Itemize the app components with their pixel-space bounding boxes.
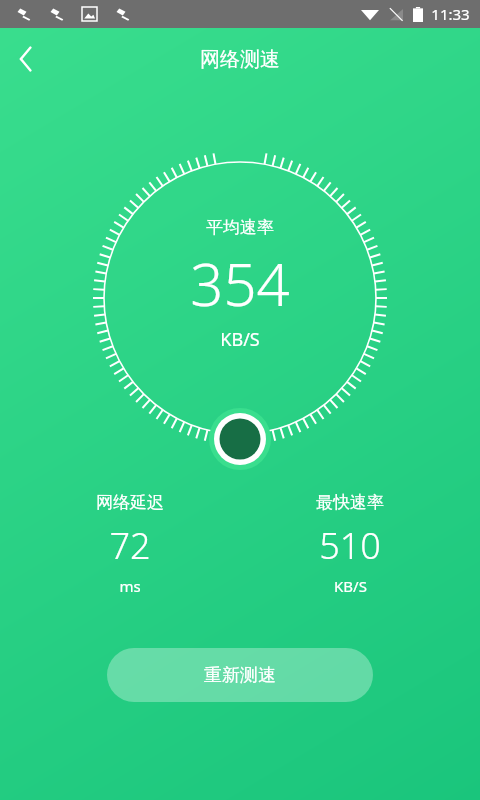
- staticText: ms: [119, 576, 141, 596]
- staticText: 72: [109, 521, 151, 570]
- staticText: 网络测速: [200, 47, 280, 72]
- staticText: 354: [190, 244, 290, 323]
- staticText: 平均速率: [206, 217, 274, 238]
- staticText: 510: [319, 521, 381, 570]
- staticText: 重新测速: [204, 664, 276, 687]
- button[interactable]: Back: [0, 33, 52, 85]
- button[interactable]: 重新测速: [107, 648, 373, 702]
- staticText: KB/S: [220, 327, 260, 352]
- staticText: 网络延迟: [96, 492, 164, 513]
- staticText: 11:33: [431, 4, 470, 24]
- staticText: 最快速率: [316, 492, 384, 513]
- staticText: KB/S: [334, 576, 367, 596]
